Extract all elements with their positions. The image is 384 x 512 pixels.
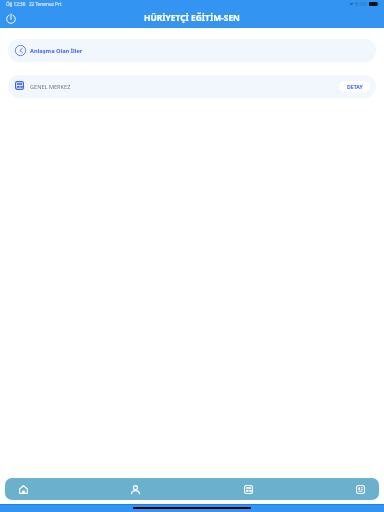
button[interactable]: Profil <box>131 478 140 500</box>
staticText: HÜRİYETÇİ EĞİTİM-SEN <box>144 12 240 23</box>
button[interactable]: Kurumlar <box>244 478 253 500</box>
staticText: Öğ 12:36 22 Temmuz Prt <box>6 1 62 7</box>
button[interactable]: Anlaşma Olan İller <box>8 39 376 62</box>
staticText: GENEL MERKEZ <box>30 83 71 91</box>
staticText: Anlaşma Olan İller <box>30 47 83 55</box>
button[interactable]: DETAY <box>339 81 370 92</box>
staticText: %100 <box>355 1 367 7</box>
staticText: DETAY <box>347 83 363 90</box>
button[interactable]: Haberler <box>356 478 365 500</box>
button[interactable]: Ana Sayfa <box>19 478 28 500</box>
button[interactable]: GENEL MERKEZ <box>8 75 376 98</box>
button[interactable]: Çıkış <box>6 14 16 24</box>
